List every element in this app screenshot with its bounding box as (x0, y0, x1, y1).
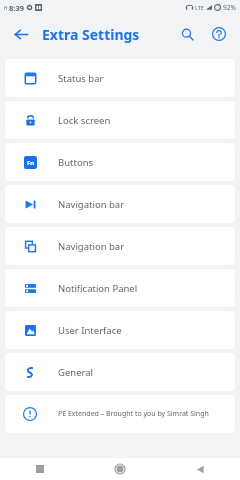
button[interactable]: PE Extended – Brought to you by Simrat S… (5, 395, 235, 433)
staticText: General (58, 366, 94, 379)
staticText: Notification Panel (58, 282, 138, 295)
button[interactable]: Recents (0, 458, 80, 480)
button[interactable]: Navigation bar (5, 185, 235, 223)
button[interactable]: Search (174, 21, 200, 47)
button[interactable]: Back (8, 21, 34, 47)
staticText: User Interface (58, 324, 122, 337)
staticText: Buttons (58, 156, 94, 169)
staticText: LTE (195, 4, 204, 11)
staticText: Lock screen (58, 114, 111, 127)
button[interactable]: User Interface (5, 311, 235, 349)
staticText: 8:39 (9, 3, 24, 13)
button[interactable]: Status bar (5, 59, 235, 97)
staticText: H (4, 5, 8, 11)
staticText: Navigation bar (58, 240, 125, 253)
button[interactable]: Home (80, 458, 160, 480)
staticText: Status bar (58, 72, 104, 85)
button[interactable]: Notification Panel (5, 269, 235, 307)
button[interactable]: Fn (5, 143, 235, 181)
button[interactable]: Lock screen (5, 101, 235, 139)
staticText: Extra Settings (42, 25, 140, 44)
button[interactable]: Navigation bar (5, 227, 235, 265)
staticText: PE Extended – Brought to you by Simrat S… (58, 409, 209, 419)
staticText: 92% (223, 3, 236, 12)
button[interactable]: Help (206, 21, 232, 47)
staticText: Navigation bar (58, 198, 125, 211)
staticText: Fn (27, 159, 35, 167)
button[interactable]: Back (160, 458, 240, 480)
button[interactable]: General (5, 353, 235, 391)
